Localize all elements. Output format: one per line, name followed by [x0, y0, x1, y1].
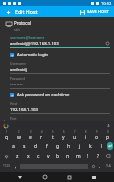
- staticText: 2: [18, 130, 20, 134]
- staticText: Host: [10, 101, 18, 105]
- staticText: g: [56, 143, 60, 150]
- staticText: androidj@192.168.1.103: [10, 40, 105, 46]
- button[interactable]: 0: [102, 130, 113, 141]
- button[interactable]: z: [12, 151, 23, 161]
- staticText: k: [89, 143, 92, 150]
- button[interactable]: d: [30, 141, 41, 151]
- staticText: m: [76, 153, 81, 160]
- staticText: v: [47, 153, 50, 160]
- button[interactable]: Enter: [107, 141, 113, 151]
- button[interactable]: Host: [0, 101, 114, 114]
- button[interactable]: b: [53, 151, 63, 161]
- button[interactable]: g: [52, 141, 63, 151]
- button[interactable]: 8: [80, 130, 91, 141]
- button[interactable]: 3: [25, 130, 36, 141]
- button[interactable]: Shift: [1, 151, 12, 161]
- button[interactable]: h: [63, 141, 74, 151]
- button[interactable]: !: [83, 151, 93, 161]
- staticText: 5: [52, 130, 54, 134]
- button[interactable]: ?123: [1, 161, 12, 171]
- staticText: e: [29, 134, 32, 141]
- staticText: w: [17, 134, 21, 141]
- button[interactable]: Home: [40, 172, 50, 182]
- button[interactable]: 7: [69, 130, 80, 141]
- button[interactable]: Back: [15, 172, 25, 182]
- button[interactable]: 9: [91, 130, 102, 141]
- staticText: o: [95, 134, 99, 141]
- button[interactable]: n: [63, 151, 73, 161]
- staticText: 6: [63, 130, 65, 134]
- staticText: ,: [15, 163, 17, 169]
- staticText: Ask password on eachtime: [17, 92, 70, 98]
- staticText: h: [67, 143, 71, 150]
- staticText: %&: [106, 164, 111, 168]
- button[interactable]: k: [85, 141, 96, 151]
- staticText: t: [52, 134, 54, 141]
- button[interactable]: ?: [93, 151, 103, 161]
- button[interactable]: 5: [47, 130, 58, 141]
- staticText: ?123: [3, 164, 10, 168]
- button[interactable]: m: [73, 151, 83, 161]
- button[interactable]: Keyboard: [89, 172, 99, 182]
- staticText: 192.168.1.103: [10, 106, 110, 112]
- button[interactable]: Automatic login: [0, 51, 114, 59]
- button[interactable]: 6: [58, 130, 69, 141]
- button[interactable]: Backspace: [103, 151, 113, 161]
- staticText: b: [56, 153, 60, 160]
- staticText: ••••••••: [10, 81, 110, 87]
- staticText: x: [27, 153, 30, 160]
- button[interactable]: l: [96, 141, 107, 151]
- staticText: d: [34, 143, 38, 150]
- staticText: !: [87, 153, 89, 159]
- staticText: y: [62, 134, 65, 141]
- staticText: i: [85, 134, 87, 141]
- button[interactable]: Username: [0, 61, 114, 74]
- button[interactable]: %&: [103, 161, 113, 171]
- staticText: r: [40, 134, 43, 141]
- staticText: Protocol: [14, 20, 32, 26]
- button[interactable]: f: [41, 141, 52, 151]
- button[interactable]: j: [74, 141, 85, 151]
- staticText: 10:52: [101, 1, 112, 6]
- staticText: c: [37, 153, 40, 160]
- staticText: Edit Host: [15, 8, 38, 15]
- button[interactable]: Recents: [64, 172, 74, 182]
- staticText: Automatic login: [17, 52, 49, 58]
- staticText: 0: [107, 130, 109, 134]
- staticText: 8: [85, 130, 87, 134]
- button[interactable]: .: [97, 161, 103, 171]
- button[interactable]: ,: [12, 161, 19, 171]
- staticText: SAVE HOST: [87, 9, 109, 15]
- button[interactable]: Voice input: [106, 123, 111, 128]
- button[interactable]: v: [43, 151, 53, 161]
- staticText: username@hostname: [10, 35, 45, 39]
- staticText: n: [66, 153, 70, 160]
- button[interactable]: x: [23, 151, 33, 161]
- staticText: j: [79, 143, 81, 150]
- button[interactable]: 2: [13, 130, 25, 141]
- staticText: 7: [74, 130, 76, 134]
- button[interactable]: Clear: [105, 41, 110, 46]
- button[interactable]: Add: [4, 8, 12, 16]
- button[interactable]: Password: [0, 76, 114, 89]
- button[interactable]: Google: [3, 123, 8, 128]
- button[interactable]: 1: [1, 130, 13, 141]
- button[interactable]: Port: [0, 116, 114, 121]
- staticText: Port: [10, 116, 17, 120]
- button[interactable]: c: [33, 151, 43, 161]
- staticText: androidj: [10, 66, 110, 72]
- button[interactable]: s: [19, 141, 30, 151]
- staticText: 4: [41, 130, 43, 134]
- button[interactable]: Emoji: [89, 161, 97, 171]
- button[interactable]: SAVE HOST: [78, 8, 111, 16]
- staticText: 3: [30, 130, 32, 134]
- staticText: l: [101, 143, 103, 150]
- button[interactable]: Ask password on eachtime: [0, 91, 114, 99]
- staticText: 1: [6, 130, 8, 134]
- button[interactable]: username@hostname: [0, 35, 114, 48]
- button[interactable]: Protocol: [0, 17, 114, 33]
- button[interactable]: 4: [36, 130, 47, 141]
- button[interactable]: a: [8, 141, 19, 151]
- staticText: s: [23, 143, 26, 150]
